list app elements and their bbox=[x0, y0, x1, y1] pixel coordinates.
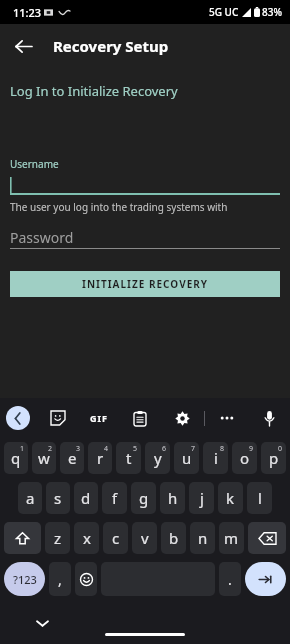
button[interactable]: Password bbox=[10, 227, 280, 249]
button[interactable]: INITIALIZE RECOVERY bbox=[10, 271, 280, 297]
staticText: Username bbox=[10, 157, 59, 171]
staticText: j bbox=[200, 488, 204, 508]
staticText: e bbox=[68, 448, 77, 468]
button[interactable]: z bbox=[45, 522, 70, 554]
staticText: i bbox=[214, 448, 218, 468]
staticText: 0 bbox=[278, 444, 283, 454]
staticText: Log In to Initialize Recovery bbox=[10, 82, 178, 100]
button[interactable]: x bbox=[74, 522, 99, 554]
staticText: d bbox=[81, 488, 91, 508]
staticText: r bbox=[97, 448, 104, 468]
button[interactable]: g bbox=[131, 482, 156, 514]
staticText: s bbox=[54, 488, 62, 508]
staticText: m bbox=[224, 528, 239, 548]
staticText: 83% bbox=[262, 5, 282, 19]
staticText: 8 bbox=[220, 444, 225, 454]
staticText: , bbox=[58, 570, 62, 589]
staticText: . bbox=[228, 570, 232, 589]
staticText: 6 bbox=[162, 444, 167, 454]
staticText: GIF bbox=[90, 412, 108, 424]
button[interactable]: f bbox=[102, 482, 127, 514]
staticText: 4 bbox=[104, 444, 109, 454]
button[interactable]: Voice input bbox=[256, 405, 282, 431]
button[interactable]: p bbox=[261, 442, 286, 474]
staticText: ?123 bbox=[13, 572, 37, 587]
staticText: 5G UC bbox=[209, 5, 239, 19]
button[interactable]: y bbox=[145, 442, 170, 474]
staticText: y bbox=[154, 448, 162, 468]
staticText: w bbox=[38, 448, 50, 468]
button[interactable]: n bbox=[190, 522, 215, 554]
button[interactable]: i bbox=[203, 442, 228, 474]
staticText: The user you log into the trading system… bbox=[10, 200, 228, 214]
button[interactable]: j bbox=[189, 482, 214, 514]
button[interactable]: GIF bbox=[86, 405, 112, 431]
button[interactable]: Backspace bbox=[248, 522, 286, 554]
button[interactable]: s bbox=[46, 482, 70, 514]
button[interactable]: t bbox=[116, 442, 141, 474]
button[interactable]: Emoji bbox=[75, 562, 97, 596]
button[interactable]: b bbox=[161, 522, 186, 554]
button[interactable]: Settings bbox=[169, 405, 195, 431]
button[interactable]: Back bbox=[6, 29, 40, 63]
button[interactable]: u bbox=[174, 442, 199, 474]
button[interactable]: d bbox=[74, 482, 98, 514]
button[interactable]: a bbox=[18, 482, 42, 514]
button[interactable]: Enter bbox=[245, 562, 286, 596]
button[interactable]: Clipboard bbox=[127, 405, 153, 431]
staticText: a bbox=[26, 488, 35, 508]
button[interactable]: Period bbox=[219, 562, 241, 596]
button[interactable]: o bbox=[232, 442, 257, 474]
button[interactable]: Stickers bbox=[45, 405, 71, 431]
staticText: Password bbox=[10, 228, 74, 247]
staticText: x bbox=[83, 528, 91, 548]
staticText: 5 bbox=[133, 444, 138, 454]
button[interactable]: l bbox=[247, 482, 272, 514]
button[interactable]: k bbox=[218, 482, 243, 514]
staticText: 11:23 bbox=[13, 5, 42, 20]
button[interactable]: m bbox=[219, 522, 244, 554]
staticText: g bbox=[139, 488, 149, 508]
staticText: k bbox=[226, 488, 235, 508]
button[interactable]: More options bbox=[214, 405, 240, 431]
staticText: p bbox=[269, 448, 279, 468]
staticText: z bbox=[54, 528, 62, 548]
staticText: v bbox=[141, 528, 149, 548]
staticText: b bbox=[169, 528, 179, 548]
button[interactable]: Back bbox=[6, 406, 30, 430]
staticText: l bbox=[258, 488, 262, 508]
button[interactable]: ?123 bbox=[4, 562, 45, 596]
staticText: Recovery Setup bbox=[53, 36, 169, 56]
button[interactable]: w bbox=[32, 442, 56, 474]
staticText: o bbox=[240, 448, 250, 468]
staticText: 7 bbox=[191, 444, 196, 454]
staticText: 2 bbox=[48, 444, 53, 454]
staticText: 9 bbox=[249, 444, 254, 454]
button[interactable]: r bbox=[88, 442, 112, 474]
button[interactable]: e bbox=[60, 442, 84, 474]
button[interactable]: Username bbox=[10, 157, 280, 214]
button[interactable]: q bbox=[4, 442, 28, 474]
staticText: u bbox=[182, 448, 192, 468]
staticText: f bbox=[112, 488, 118, 508]
staticText: q bbox=[11, 448, 21, 468]
button[interactable]: c bbox=[103, 522, 128, 554]
staticText: t bbox=[126, 448, 132, 468]
staticText: 3 bbox=[76, 444, 81, 454]
button[interactable]: Comma bbox=[49, 562, 71, 596]
button[interactable]: v bbox=[132, 522, 157, 554]
button[interactable]: Hide keyboard bbox=[30, 611, 54, 635]
staticText: 1 bbox=[20, 444, 25, 454]
staticText: n bbox=[198, 528, 208, 548]
button[interactable]: h bbox=[160, 482, 185, 514]
staticText: INITIALIZE RECOVERY bbox=[82, 277, 209, 291]
button[interactable]: Shift bbox=[4, 522, 41, 554]
staticText: c bbox=[112, 528, 120, 548]
staticText: h bbox=[168, 488, 178, 508]
